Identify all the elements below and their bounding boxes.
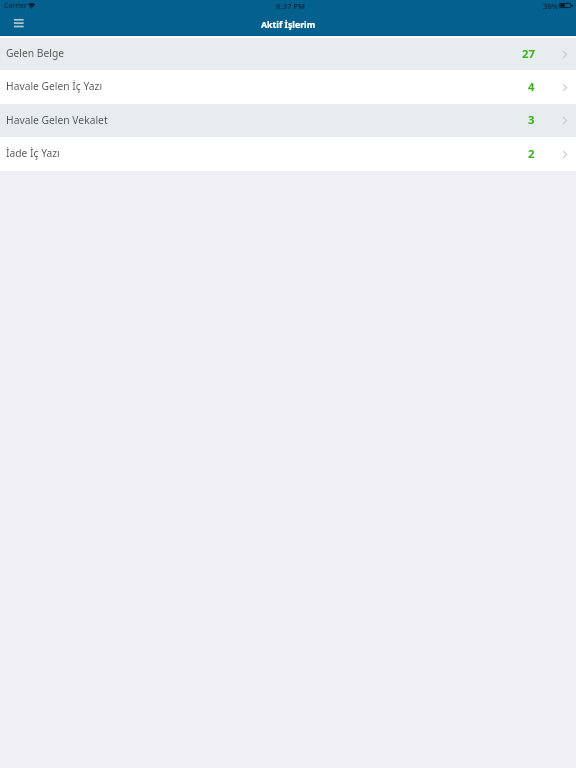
staticText: İade İç Yazı [6, 146, 60, 160]
button[interactable]: Menu [8, 15, 29, 32]
staticText: Havale Gelen İç Yazı [6, 79, 103, 93]
button[interactable]: Havale Gelen Vekalet [0, 104, 576, 137]
staticText: 2 [528, 146, 535, 161]
staticText: 3 [528, 112, 535, 127]
button[interactable]: Gelen Belge [0, 38, 576, 70]
button[interactable]: İade İç Yazı [0, 137, 576, 171]
staticText: Carrier [4, 1, 27, 10]
staticText: Havale Gelen Vekalet [6, 113, 108, 127]
staticText: 27 [522, 46, 535, 61]
button[interactable]: Havale Gelen İç Yazı [0, 70, 576, 104]
staticText: 4 [528, 79, 535, 94]
staticText: Aktif İşlerim [261, 19, 316, 31]
staticText: 38% [543, 1, 559, 11]
staticText: Gelen Belge [6, 46, 65, 60]
staticText: 8:37 PM [276, 1, 306, 11]
